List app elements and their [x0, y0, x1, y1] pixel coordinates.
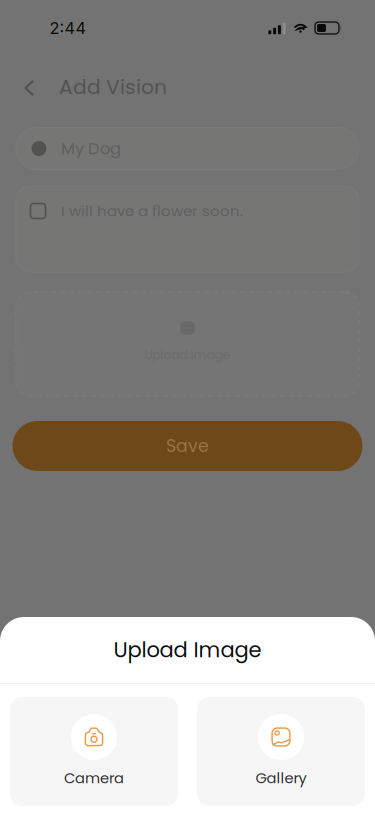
staticText: Upload Image [113, 635, 261, 665]
staticText: 2:44 [49, 18, 86, 38]
staticText: Add Vision [59, 73, 167, 101]
staticText: Camera [64, 768, 124, 788]
button[interactable]: Camera [10, 697, 178, 806]
staticText: Save [166, 434, 209, 458]
staticText: My Dog [61, 137, 121, 160]
staticText: I will have a flower soon. [61, 200, 243, 221]
button[interactable]: Gallery [197, 697, 365, 806]
staticText: Upload Image [144, 346, 230, 364]
staticText: Gallery [255, 768, 306, 788]
